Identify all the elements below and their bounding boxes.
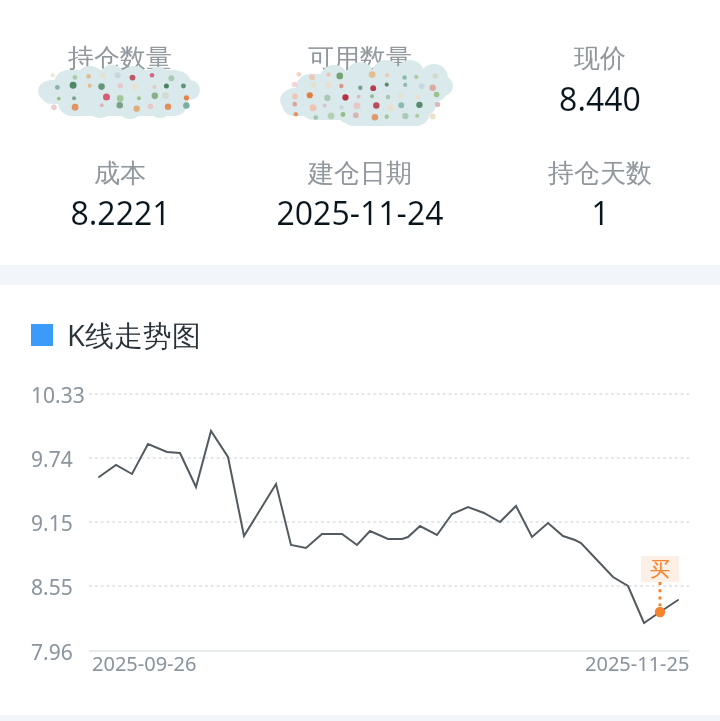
button[interactable]: 成本 xyxy=(0,157,240,189)
button[interactable]: 可用数量 xyxy=(240,42,480,74)
staticText: 2025-09-26 xyxy=(92,650,197,677)
staticText: 10.33 xyxy=(31,381,85,410)
staticText: 9.74 xyxy=(31,445,73,474)
staticText: 成本 xyxy=(94,157,146,189)
button[interactable]: 买 xyxy=(641,556,679,582)
staticText: 8.440 xyxy=(559,77,641,121)
staticText: 2025-11-24 xyxy=(276,191,444,235)
button[interactable]: 持仓数量 xyxy=(0,42,240,74)
staticText: 2025-11-25 xyxy=(585,650,690,677)
staticText: 持仓天数 xyxy=(548,157,652,189)
staticText: 7.96 xyxy=(31,638,73,667)
button[interactable]: 现价 xyxy=(480,42,720,74)
staticText: 1 xyxy=(591,191,610,235)
staticText: 现价 xyxy=(574,42,626,74)
staticText: 9.15 xyxy=(31,509,73,538)
staticText: 建仓日期 xyxy=(308,157,412,189)
button[interactable]: K线走势图 xyxy=(31,315,201,355)
staticText: 持仓数量 xyxy=(68,42,172,74)
staticText: 8.2221 xyxy=(70,191,171,235)
button[interactable]: 建仓日期 xyxy=(240,157,480,189)
staticText: 可用数量 xyxy=(308,42,412,74)
staticText: 买 xyxy=(650,557,670,582)
staticText: 8.55 xyxy=(31,573,73,602)
button[interactable]: 持仓天数 xyxy=(480,157,720,189)
staticText: K线走势图 xyxy=(67,315,201,355)
